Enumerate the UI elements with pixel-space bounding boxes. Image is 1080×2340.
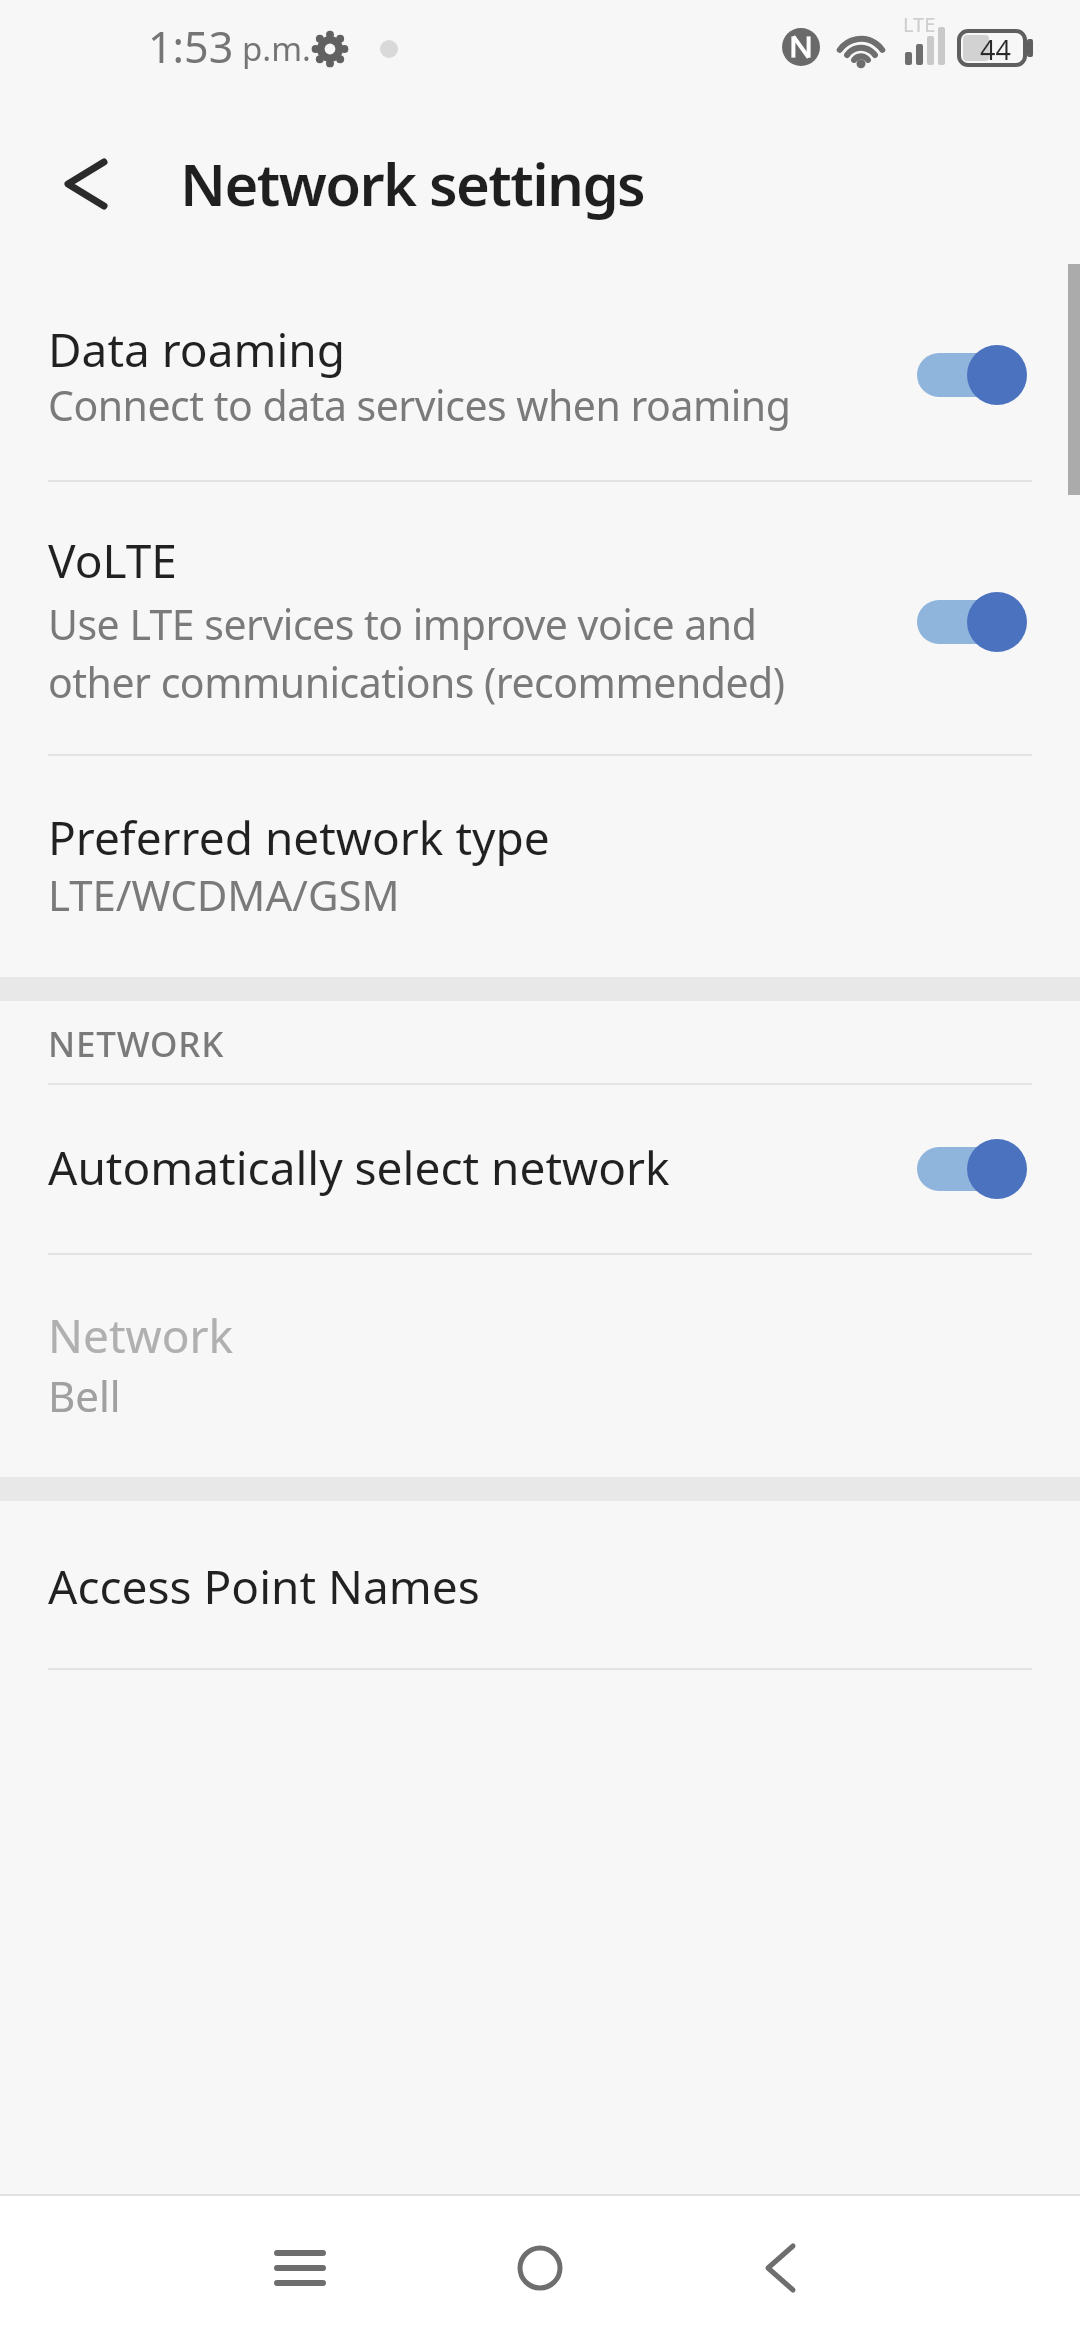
button[interactable]: [917, 1139, 1027, 1199]
button[interactable]: Access Point Names: [0, 1501, 1080, 1668]
button[interactable]: VoLTE: [0, 482, 1080, 754]
button[interactable]: [490, 2218, 590, 2318]
staticText: Use LTE services to improve voice and ot…: [48, 596, 785, 710]
staticText: Preferred network type: [48, 806, 550, 869]
staticText: 44: [980, 31, 1011, 68]
button[interactable]: [250, 2218, 350, 2318]
staticText: VoLTE: [48, 529, 177, 592]
staticText: Access Point Names: [48, 1555, 480, 1618]
staticText: NETWORK: [48, 1020, 225, 1068]
button[interactable]: Automatically select network: [0, 1085, 1080, 1253]
staticText: 1:53: [148, 17, 234, 76]
button[interactable]: Preferred network type: [0, 756, 1080, 977]
button[interactable]: [730, 2218, 830, 2318]
button[interactable]: [917, 592, 1027, 652]
staticText: Automatically select network: [48, 1136, 670, 1199]
button[interactable]: [917, 345, 1027, 405]
staticText: Data roaming: [48, 318, 346, 381]
button[interactable]: Data roaming: [0, 300, 1080, 480]
staticText: LTE/WCDMA/GSM: [48, 866, 400, 923]
staticText: Bell: [48, 1367, 121, 1424]
button[interactable]: [40, 150, 130, 220]
staticText: Connect to data services when roaming: [48, 377, 791, 433]
staticText: p.m.: [242, 26, 311, 71]
staticText: Network: [48, 1304, 234, 1367]
staticText: Network settings: [180, 144, 645, 223]
staticText: LTE: [903, 11, 936, 38]
